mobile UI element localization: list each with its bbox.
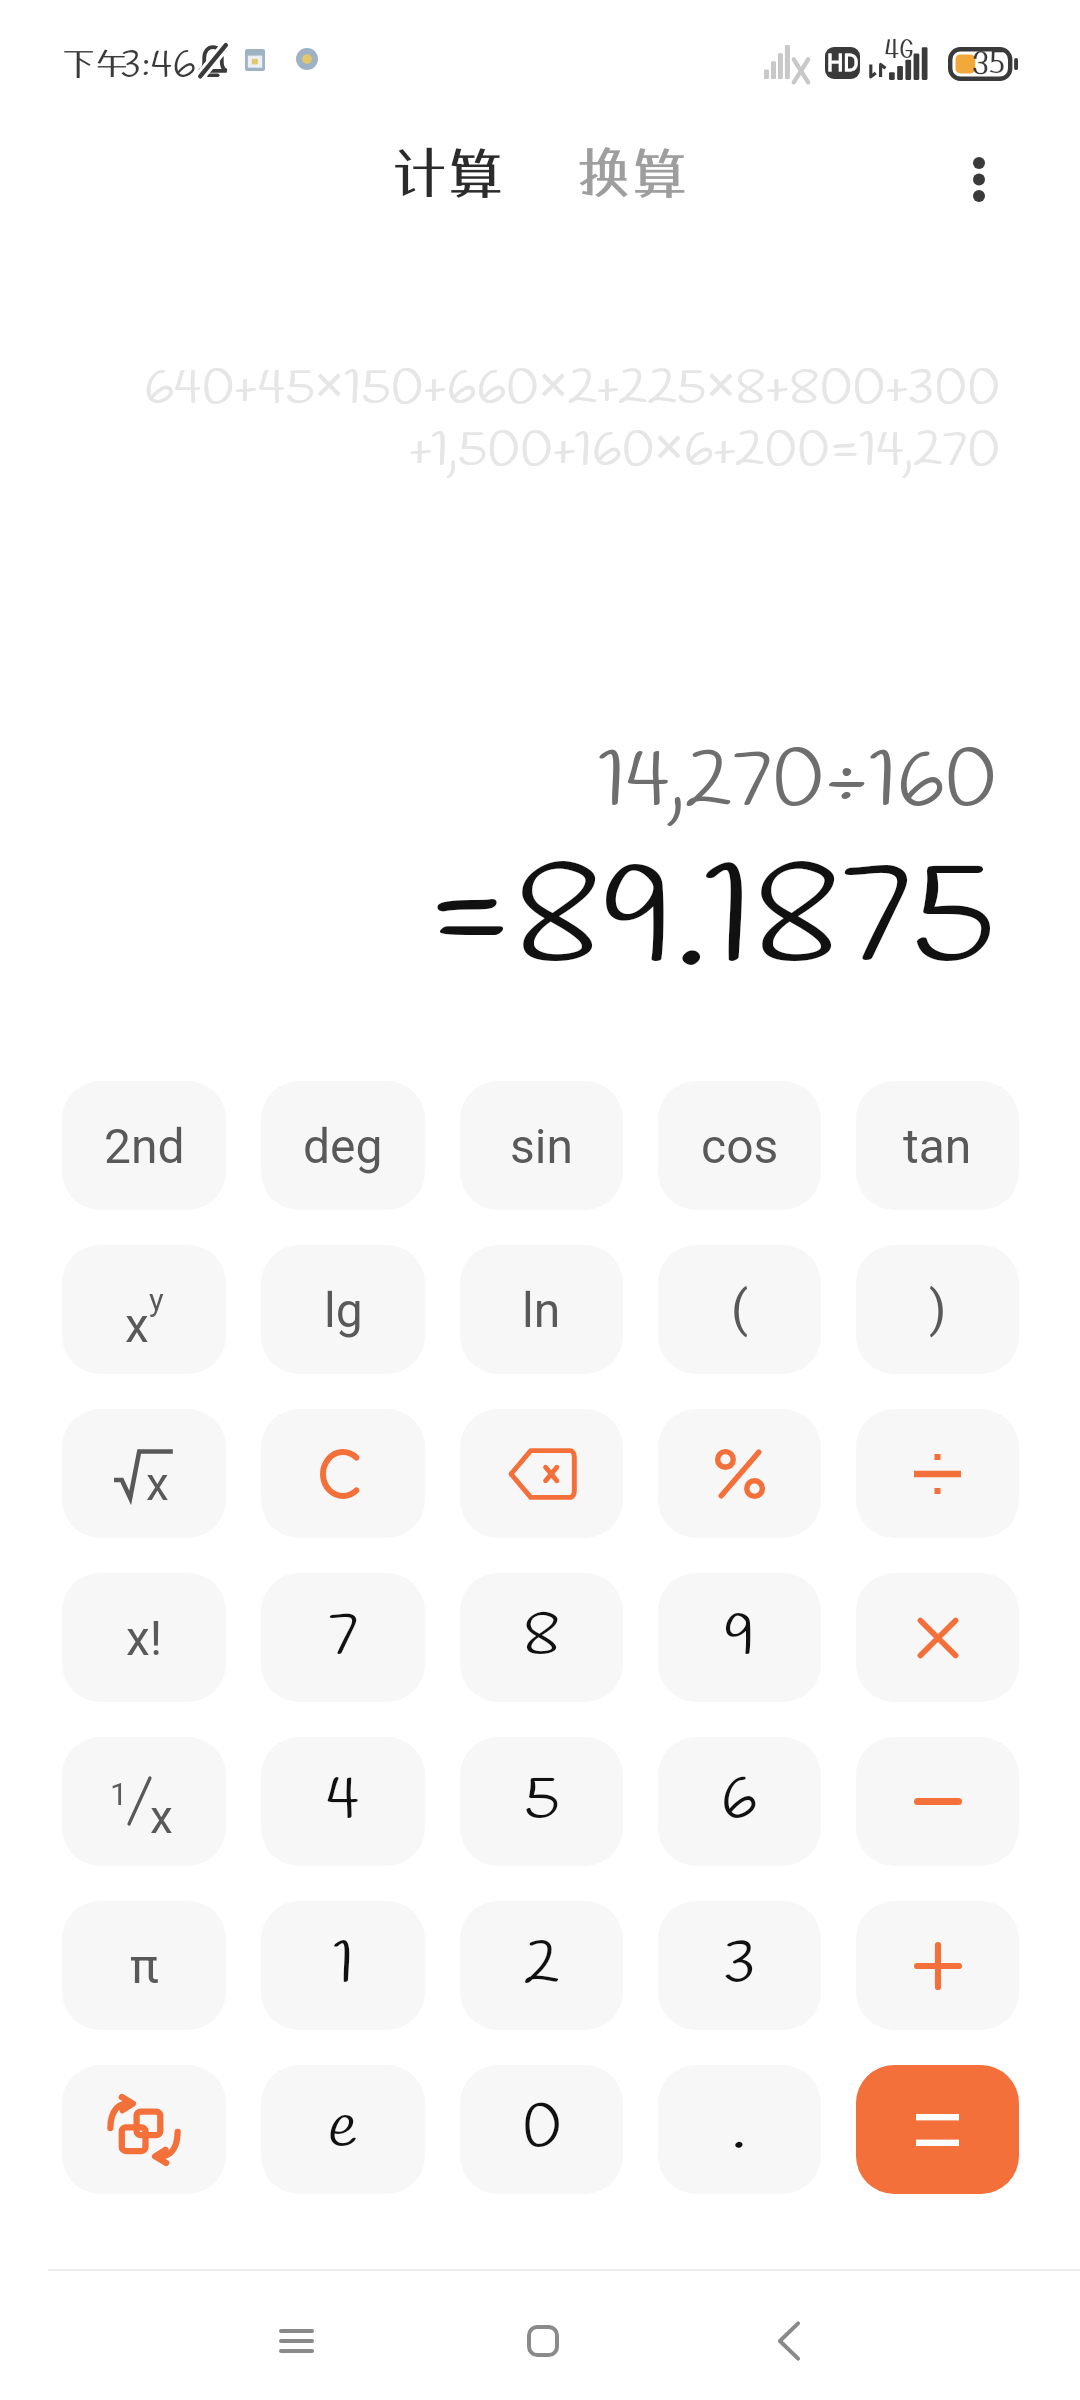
button[interactable]: 计算	[373, 122, 523, 222]
button[interactable]: 5	[460, 1737, 623, 1866]
button[interactable]: Switch keypad	[62, 2065, 226, 2194]
button[interactable]: More options	[926, 127, 1031, 232]
button[interactable]: 3	[658, 1901, 821, 2030]
staticText: 换算	[576, 139, 688, 205]
staticText: 1	[110, 1776, 128, 1812]
button[interactable]: Recent apps	[236, 2281, 356, 2400]
button[interactable]: x	[62, 1245, 226, 1374]
button[interactable]: Home	[483, 2281, 603, 2400]
staticText: 6	[721, 1760, 758, 1843]
staticText: 2nd	[104, 1118, 185, 1174]
staticText: 35	[972, 44, 1005, 79]
button[interactable]: lg	[261, 1245, 425, 1374]
staticText: lg	[324, 1282, 363, 1338]
staticText: 9	[724, 1596, 756, 1679]
staticText: 8	[523, 1596, 561, 1679]
staticText: 4	[326, 1760, 360, 1843]
staticText: 2	[524, 1924, 560, 2007]
staticText: (	[731, 1280, 749, 1339]
button[interactable]: .	[658, 2065, 821, 2194]
button[interactable]: Back	[729, 2281, 849, 2400]
staticText: ln	[522, 1282, 561, 1338]
button[interactable]: sin	[460, 1081, 623, 1210]
staticText: 7	[328, 1596, 359, 1679]
staticText: HD	[827, 50, 859, 77]
staticText: .	[732, 2088, 747, 2171]
staticText: 640+45×150+660×2+225×8+800+300 +1,500+16…	[40, 348, 1000, 485]
button[interactable]: deg	[261, 1081, 425, 1210]
staticText: 下午	[62, 44, 128, 83]
button[interactable]: 9	[658, 1573, 821, 1702]
button[interactable]: Minus	[856, 1737, 1019, 1866]
staticText: deg	[303, 1118, 383, 1174]
staticText: cos	[701, 1118, 779, 1174]
button[interactable]: Percent	[658, 1409, 821, 1538]
button[interactable]: x	[62, 1409, 226, 1538]
button[interactable]: Equals	[856, 2065, 1019, 2194]
button[interactable]: 4	[261, 1737, 425, 1866]
staticText: 1	[333, 1924, 354, 2007]
staticText: 14,270÷160	[598, 728, 998, 837]
button[interactable]: cos	[658, 1081, 821, 1210]
button[interactable]: 2	[460, 1901, 623, 2030]
staticText: 3:46	[120, 40, 196, 93]
button[interactable]: (	[658, 1245, 821, 1374]
button[interactable]: 0	[460, 2065, 623, 2194]
button[interactable]: )	[856, 1245, 1019, 1374]
button[interactable]: 1	[261, 1901, 425, 2030]
staticText: =89.1875	[426, 825, 996, 1020]
staticText: )	[929, 1280, 947, 1339]
button[interactable]: Divide	[856, 1409, 1019, 1538]
staticText: 3	[723, 1924, 756, 2007]
button[interactable]: 换算	[557, 122, 707, 222]
staticText: x	[146, 1457, 169, 1507]
button[interactable]: x!	[62, 1573, 226, 1702]
staticText: 4G	[884, 33, 914, 62]
staticText: π	[130, 1938, 159, 1994]
button[interactable]: Clear	[261, 1409, 425, 1538]
button[interactable]: Multiply	[856, 1573, 1019, 1702]
button[interactable]: 7	[261, 1573, 425, 1702]
button[interactable]: Plus	[856, 1901, 1019, 2030]
button[interactable]: 8	[460, 1573, 623, 1702]
staticText: y	[149, 1282, 164, 1318]
staticText: 计算	[392, 139, 504, 205]
button[interactable]: 1	[62, 1737, 226, 1866]
button[interactable]: tan	[856, 1081, 1019, 1210]
button[interactable]: Delete	[460, 1409, 623, 1538]
button[interactable]: 6	[658, 1737, 821, 1866]
button[interactable]: 2nd	[62, 1081, 226, 1210]
button[interactable]: e	[261, 2065, 425, 2194]
button[interactable]: ln	[460, 1245, 623, 1374]
staticText: 5	[524, 1760, 560, 1843]
staticText: x	[125, 1297, 149, 1353]
staticText: tan	[903, 1118, 972, 1174]
staticText: x!	[126, 1610, 163, 1666]
staticText: 0	[522, 2088, 562, 2171]
staticText: x	[150, 1790, 173, 1844]
staticText: e	[328, 2088, 358, 2171]
button[interactable]: π	[62, 1901, 226, 2030]
staticText: sin	[510, 1118, 573, 1174]
